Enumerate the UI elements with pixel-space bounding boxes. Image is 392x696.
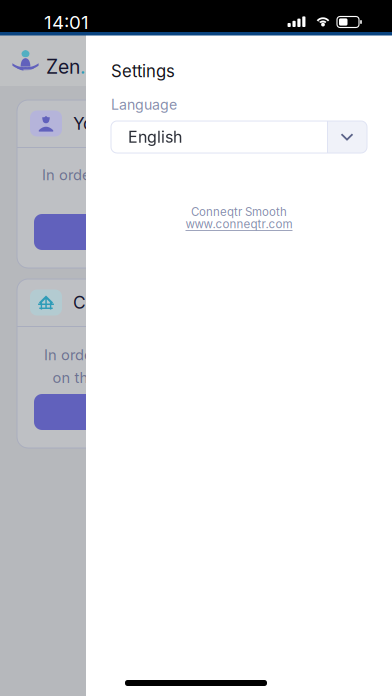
button[interactable]: English: [111, 121, 367, 153]
staticText: Language: [111, 96, 177, 113]
staticText: Conneqtr Smooth: [191, 205, 287, 219]
staticText: .: [80, 55, 86, 78]
staticText: English: [128, 127, 182, 147]
staticText: Zen: [46, 55, 80, 78]
staticText: www.conneqtr.com: [185, 217, 292, 231]
staticText: 14:01: [44, 11, 89, 34]
staticText: In order to see your plan, you need to l…: [42, 166, 350, 184]
staticText: Your plan: [73, 113, 150, 134]
button[interactable]: www.conneqtr.com: [86, 217, 392, 231]
staticText: Settings: [111, 61, 175, 81]
staticText: Community: [73, 292, 166, 313]
staticText: on the page and be a registered member: [52, 369, 339, 386]
staticText: In order to see the community, you need …: [44, 346, 348, 364]
